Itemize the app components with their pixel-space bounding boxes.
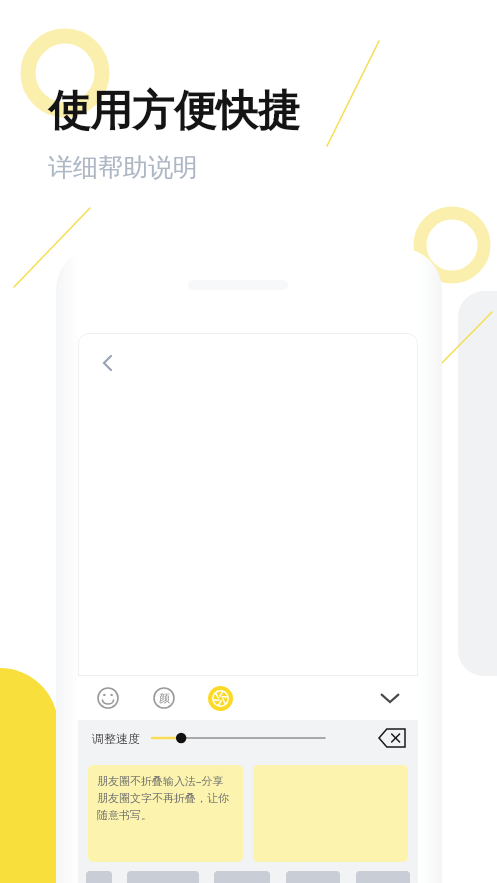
button[interactable]: Suggestion 5 (356, 871, 410, 883)
button[interactable]: 朋友圈不折叠输入法–分享朋友圈文字不再折叠，让你随意书写。 (88, 765, 243, 862)
staticText: 详细帮助说明 (48, 152, 198, 183)
staticText: 朋友圈不折叠输入法–分享朋友圈文字不再折叠，让你随意书写。 (97, 773, 234, 822)
button[interactable]: Backspace (374, 720, 410, 756)
button[interactable]: Suggestion 4 (286, 871, 340, 883)
button[interactable]: Adjust speed (152, 726, 368, 750)
staticText: 调整速度 (92, 731, 140, 746)
button[interactable]: Back (88, 343, 128, 383)
button[interactable]: Emoji (90, 680, 126, 716)
button[interactable]: Suggestion 1 (86, 871, 112, 883)
button[interactable]: Effects (202, 680, 238, 716)
button[interactable]: Face style (146, 680, 182, 716)
staticText: 使用方便快捷 (48, 85, 300, 138)
button[interactable]: Collapse (368, 676, 412, 720)
button[interactable]: Suggestion 3 (214, 871, 270, 883)
staticText: 颜 (159, 691, 170, 705)
